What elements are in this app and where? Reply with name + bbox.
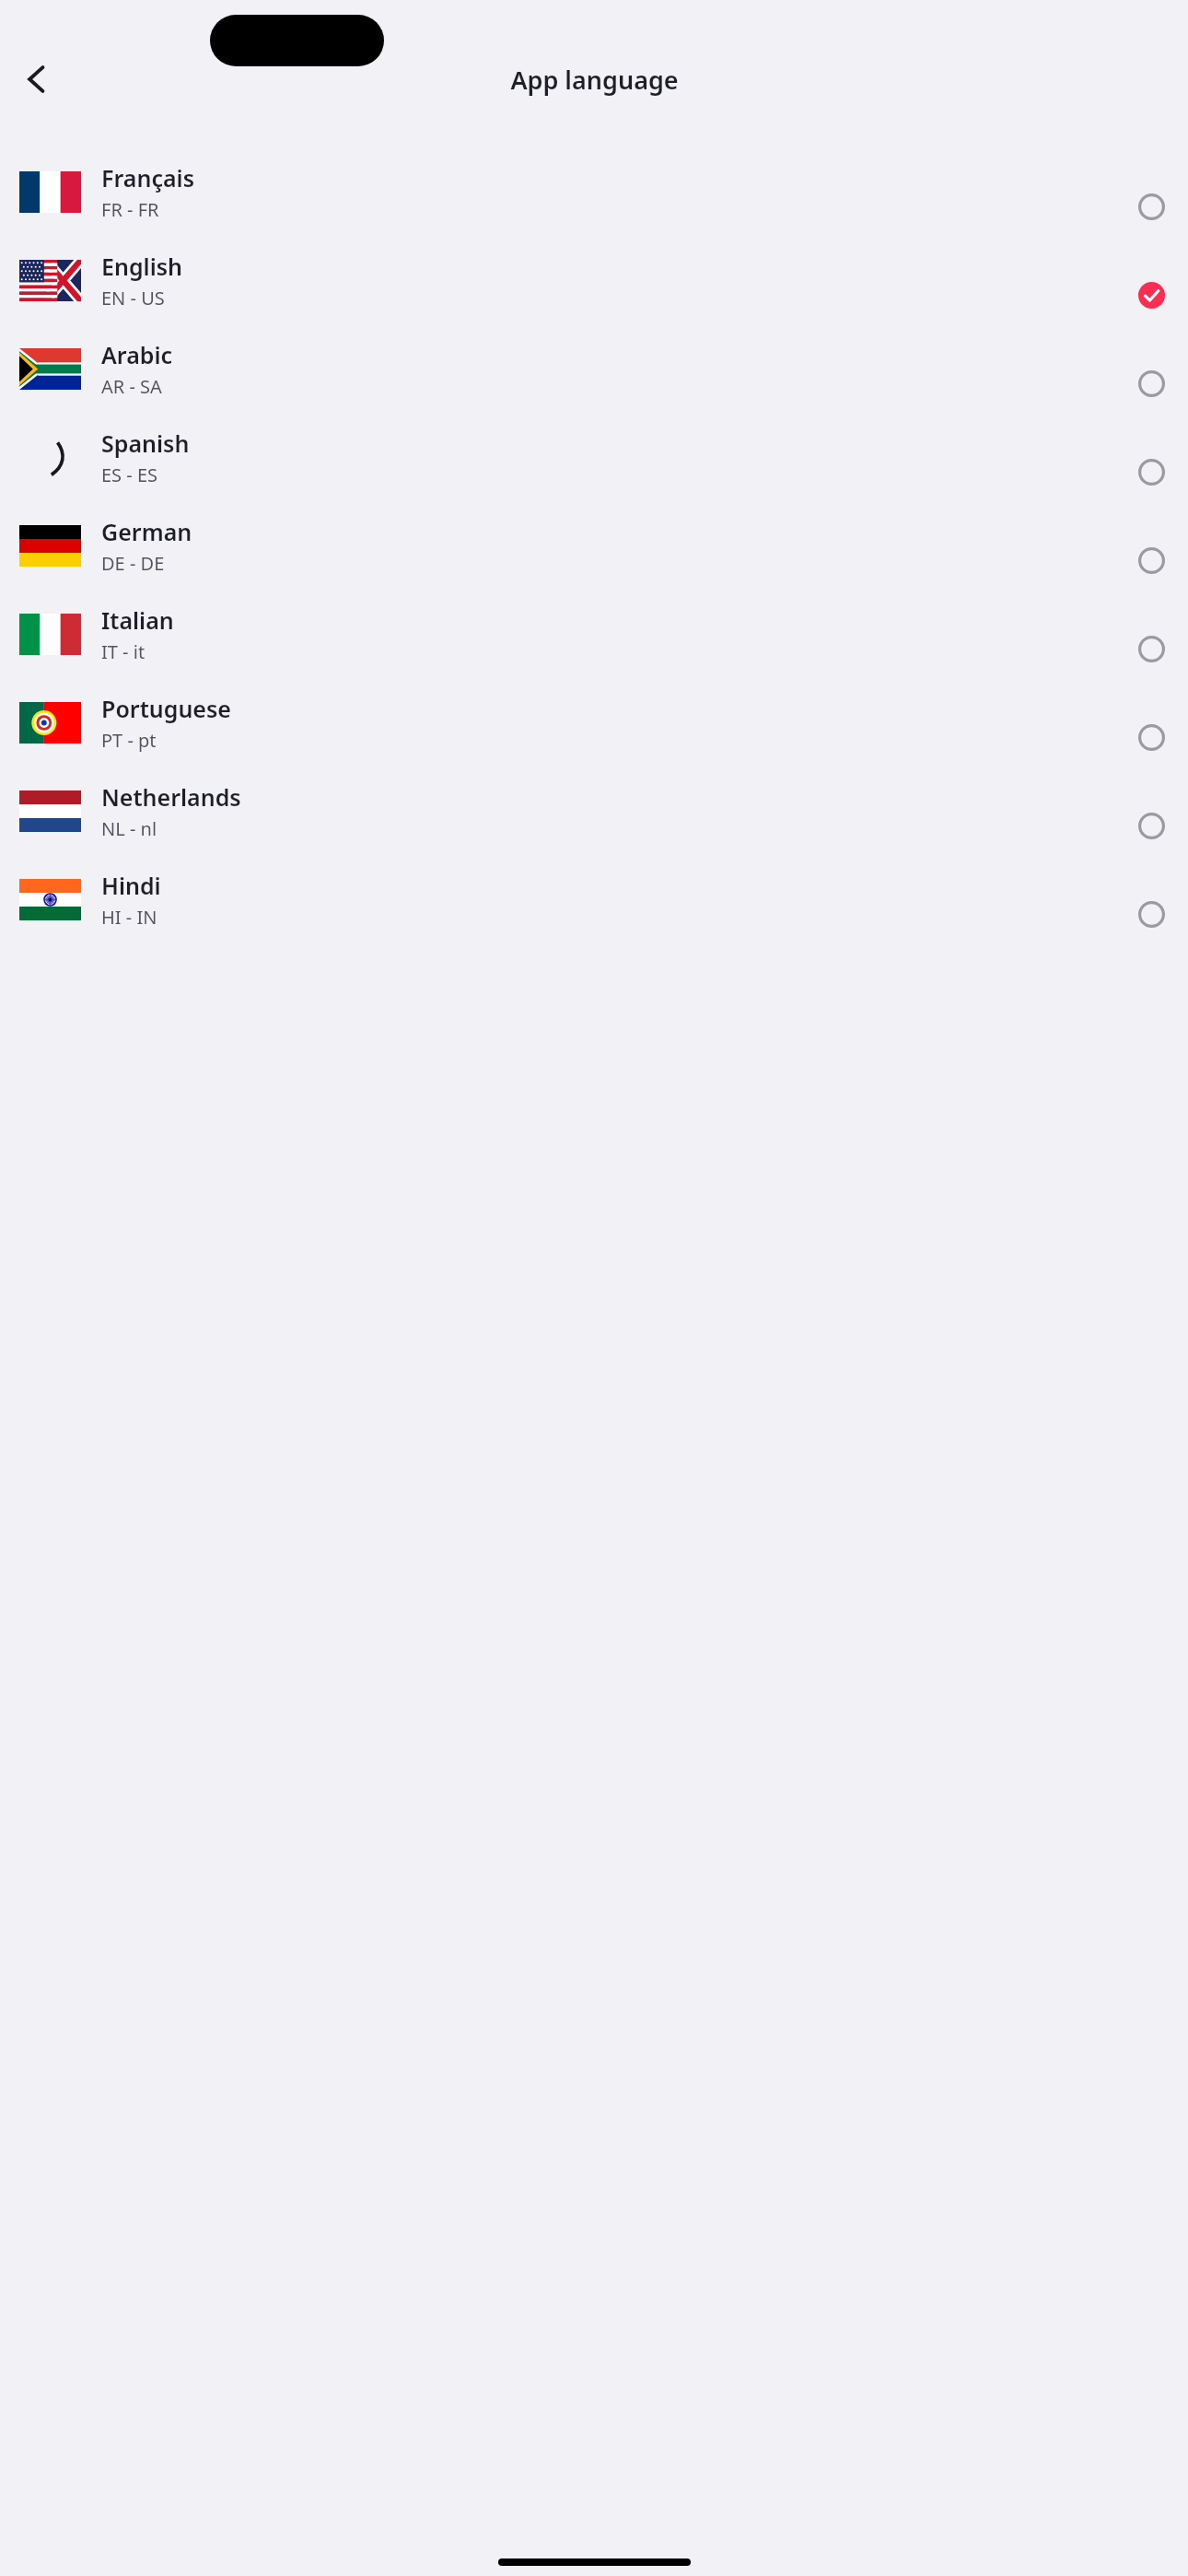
- staticText: English: [101, 251, 182, 282]
- staticText: IT - it: [101, 639, 146, 664]
- button[interactable]: Spanish: [1126, 447, 1176, 497]
- button[interactable]: English: [0, 251, 1188, 339]
- staticText: App language: [510, 63, 679, 97]
- staticText: FR - FR: [101, 197, 159, 222]
- staticText: DE - DE: [101, 551, 165, 576]
- staticText: Netherlands: [101, 781, 241, 813]
- staticText: PT - pt: [101, 728, 157, 753]
- staticText: Français: [101, 162, 194, 193]
- staticText: Italian: [101, 604, 174, 636]
- button[interactable]: Portuguese: [0, 693, 1188, 781]
- button[interactable]: Spanish: [0, 427, 1188, 516]
- staticText: Hindi: [101, 870, 161, 901]
- staticText: EN - US: [101, 286, 165, 310]
- staticText: HI - IN: [101, 905, 157, 930]
- staticText: German: [101, 516, 192, 547]
- staticText: ES - ES: [101, 463, 158, 487]
- button[interactable]: Arabic: [1126, 358, 1176, 408]
- button[interactable]: Italian: [1126, 624, 1176, 673]
- button[interactable]: Portuguese: [1126, 712, 1176, 762]
- button[interactable]: Arabic: [0, 339, 1188, 427]
- staticText: Portuguese: [101, 693, 231, 724]
- button[interactable]: Français: [0, 162, 1188, 251]
- staticText: AR - SA: [101, 374, 162, 399]
- button[interactable]: Français: [1126, 181, 1176, 231]
- button[interactable]: German: [1126, 535, 1176, 585]
- button[interactable]: German: [0, 516, 1188, 604]
- button[interactable]: Netherlands: [0, 781, 1188, 870]
- staticText: Spanish: [101, 427, 190, 459]
- button[interactable]: Hindi: [1126, 889, 1176, 939]
- button[interactable]: Netherlands: [1126, 801, 1176, 850]
- staticText: Arabic: [101, 339, 173, 370]
- button[interactable]: Back: [9, 51, 66, 108]
- staticText: NL - nl: [101, 816, 157, 841]
- button[interactable]: Italian: [0, 604, 1188, 693]
- button[interactable]: Hindi: [0, 870, 1188, 958]
- button[interactable]: English: [1126, 270, 1176, 320]
